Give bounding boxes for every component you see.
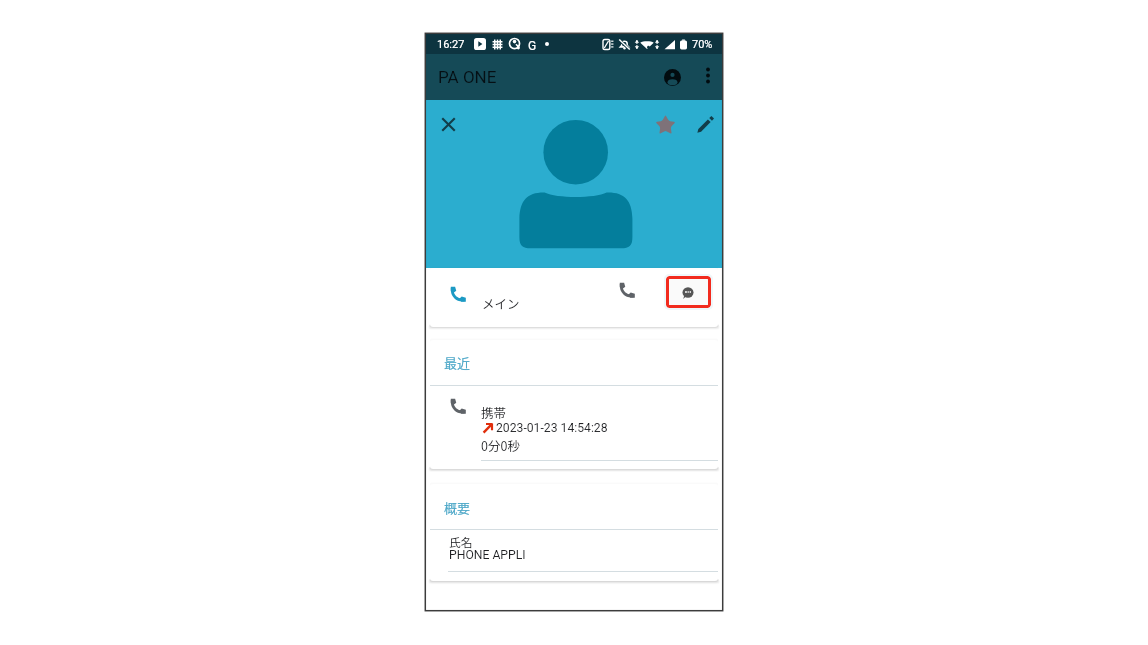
staticText: メイン [482,294,520,312]
staticText: 最近 [444,353,471,372]
staticText: PA ONE [438,67,497,87]
button[interactable]: Close [434,110,462,138]
staticText: 0分0秒 [481,436,520,454]
button[interactable] [430,268,606,327]
button[interactable]: 携帯 [430,386,718,460]
staticText: 70% [692,38,713,51]
button[interactable]: 氏名 [430,530,718,581]
button[interactable]: Edit [690,109,720,139]
staticText: G [528,39,537,50]
button[interactable]: Account [657,62,687,92]
staticText: 2023-01-23 14:54:28 [496,421,608,435]
button[interactable]: Call [610,273,644,307]
staticText: PHONE APPLI [449,548,526,562]
staticText: 16:27 [437,38,465,51]
staticText: 概要 [444,498,471,517]
staticText: 氏名 [449,533,473,550]
button[interactable]: More options [695,62,721,88]
button[interactable]: Send message [666,276,711,308]
button[interactable]: Favorite [650,109,680,139]
staticText: 携帯 [481,403,507,421]
